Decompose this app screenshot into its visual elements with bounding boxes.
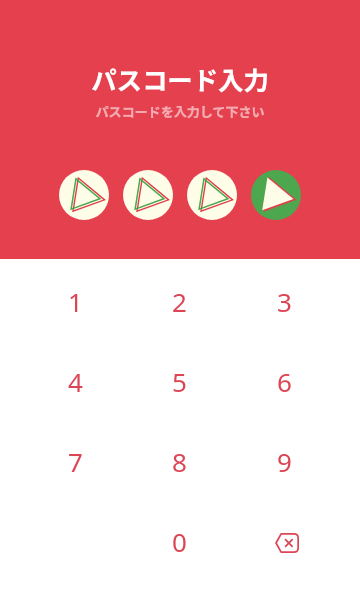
staticText: 6: [277, 364, 292, 399]
button[interactable]: 4: [23, 341, 127, 421]
button[interactable]: 9: [232, 421, 337, 501]
staticText: パスコードを入力して下さい: [95, 102, 265, 121]
staticText: 2: [172, 284, 187, 319]
staticText: 1: [68, 284, 83, 319]
staticText: 9: [277, 444, 292, 479]
button[interactable]: 6: [232, 341, 337, 421]
staticText: 5: [172, 364, 187, 399]
button[interactable]: 8: [127, 421, 232, 501]
button[interactable]: 2: [127, 261, 232, 341]
button[interactable]: 7: [23, 421, 127, 501]
staticText: 7: [68, 444, 83, 479]
button[interactable]: 0: [127, 501, 232, 581]
other: Backspace: [274, 533, 299, 553]
staticText: 0: [172, 524, 187, 559]
button[interactable]: 1: [23, 261, 127, 341]
button[interactable]: 5: [127, 341, 232, 421]
staticText: 8: [172, 444, 187, 479]
button[interactable]: 3: [232, 261, 337, 341]
staticText: パスコード入力: [91, 61, 269, 98]
staticText: 3: [277, 284, 292, 319]
button[interactable]: Backspace: [232, 501, 337, 581]
staticText: 4: [68, 364, 83, 399]
